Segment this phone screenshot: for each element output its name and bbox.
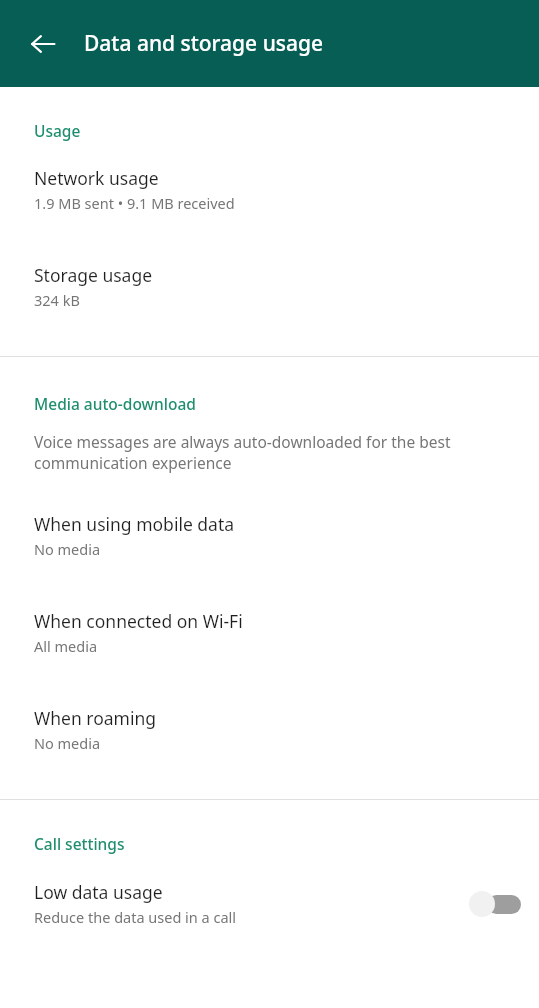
staticText: All media [34,636,98,656]
button[interactable]: When connected on Wi-Fi [0,609,539,656]
staticText: Call settings [34,833,125,854]
staticText: Storage usage [34,263,153,287]
button[interactable]: Low data usage toggle [469,889,521,919]
staticText: Media auto-download [34,393,196,414]
staticText: Data and storage usage [84,29,324,58]
button[interactable]: Network usage [0,166,539,213]
staticText: Low data usage [34,880,163,904]
staticText: When roaming [34,706,157,730]
staticText: No media [34,539,101,559]
staticText: When connected on Wi-Fi [34,609,243,633]
staticText: Network usage [34,166,159,190]
staticText: When using mobile data [34,512,235,536]
button[interactable]: Back [19,20,67,68]
button[interactable]: When using mobile data [0,512,539,559]
staticText: Usage [34,120,81,141]
button[interactable]: Storage usage [0,263,539,310]
staticText: 324 kB [34,290,80,310]
staticText: Reduce the data used in a call [34,907,237,927]
staticText: 1.9 MB sent • 9.1 MB received [34,193,235,213]
staticText: No media [34,733,101,753]
staticText: Voice messages are always auto-downloade… [34,431,509,474]
button[interactable]: Low data usage [0,880,539,927]
button[interactable]: When roaming [0,706,539,753]
